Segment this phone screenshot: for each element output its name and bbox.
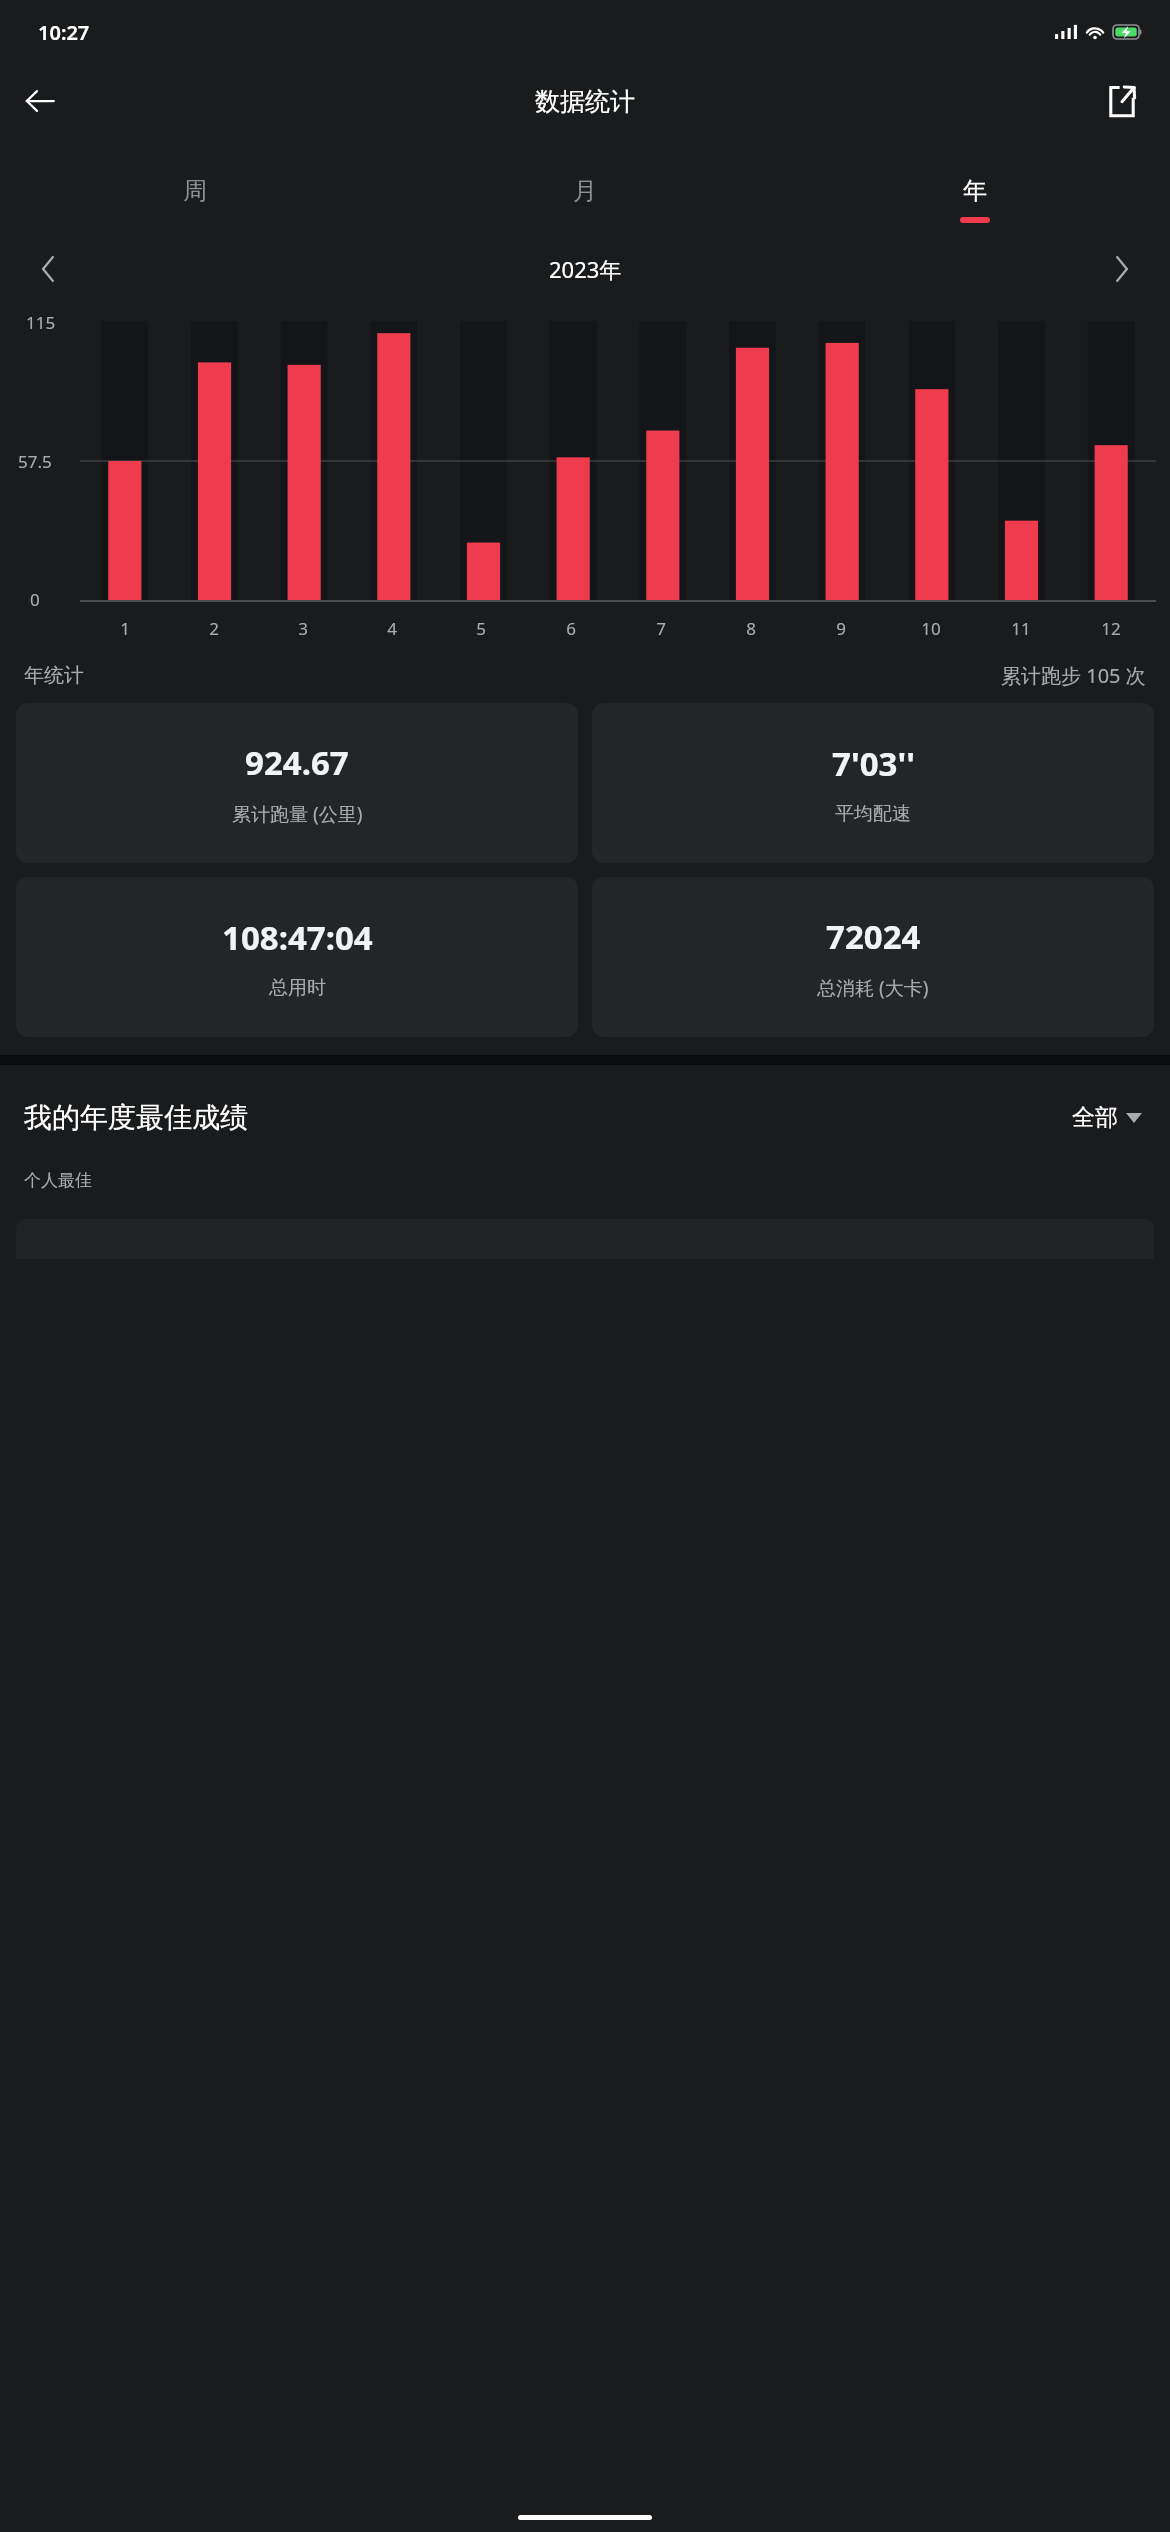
button[interactable]: 108:47:04 <box>16 877 578 1037</box>
staticText: 10:27 <box>38 19 90 46</box>
staticText: 6 <box>566 617 576 640</box>
staticText: 7 <box>656 617 666 640</box>
button[interactable]: 72024 <box>592 877 1154 1037</box>
staticText: 数据统计 <box>535 86 635 117</box>
staticText: 累计跑步 105 次 <box>1001 662 1146 689</box>
staticText: 2023年 <box>549 254 622 284</box>
button[interactable]: 周 <box>0 170 390 229</box>
button[interactable]: 月 <box>390 170 780 229</box>
staticText: 924.67 <box>245 740 349 785</box>
staticText: 总用时 <box>269 976 326 1000</box>
staticText: 57.5 <box>18 450 52 473</box>
staticText: 10 <box>921 617 941 640</box>
staticText: 月 <box>573 176 597 206</box>
staticText: 1 <box>120 617 130 640</box>
staticText: 3 <box>298 617 308 640</box>
staticText: 11 <box>1011 617 1031 640</box>
staticText: 72024 <box>826 914 921 959</box>
staticText: 个人最佳 <box>24 1170 92 1191</box>
staticText: 年 <box>963 176 987 206</box>
staticText: 2 <box>209 617 219 640</box>
staticText: 我的年度最佳成绩 <box>24 1100 248 1135</box>
button[interactable]: 上一年 <box>20 241 76 297</box>
staticText: 平均配速 <box>835 802 911 826</box>
staticText: 12 <box>1101 617 1121 640</box>
staticText: 总消耗 (大卡) <box>817 975 929 1001</box>
staticText: 周 <box>183 176 207 206</box>
staticText: 7'03'' <box>832 741 915 786</box>
staticText: 全部 <box>1072 1103 1118 1132</box>
button[interactable]: 7'03'' <box>592 703 1154 863</box>
staticText: 8 <box>746 617 756 640</box>
staticText: 累计跑量 (公里) <box>232 801 363 827</box>
button[interactable]: 返回 <box>10 71 70 131</box>
staticText: 108:47:04 <box>222 915 373 960</box>
button[interactable]: 全部 <box>1068 1099 1146 1136</box>
staticText: 0 <box>30 588 40 611</box>
button[interactable]: 924.67 <box>16 703 578 863</box>
staticText: 9 <box>836 617 846 640</box>
button[interactable]: 分享 <box>1092 71 1152 131</box>
staticText: 115 <box>26 311 56 334</box>
button[interactable]: 年 <box>780 170 1170 229</box>
button[interactable]: 下一年 <box>1094 241 1150 297</box>
staticText: 年统计 <box>24 663 84 688</box>
staticText: 4 <box>387 617 397 640</box>
staticText: 5 <box>476 617 486 640</box>
